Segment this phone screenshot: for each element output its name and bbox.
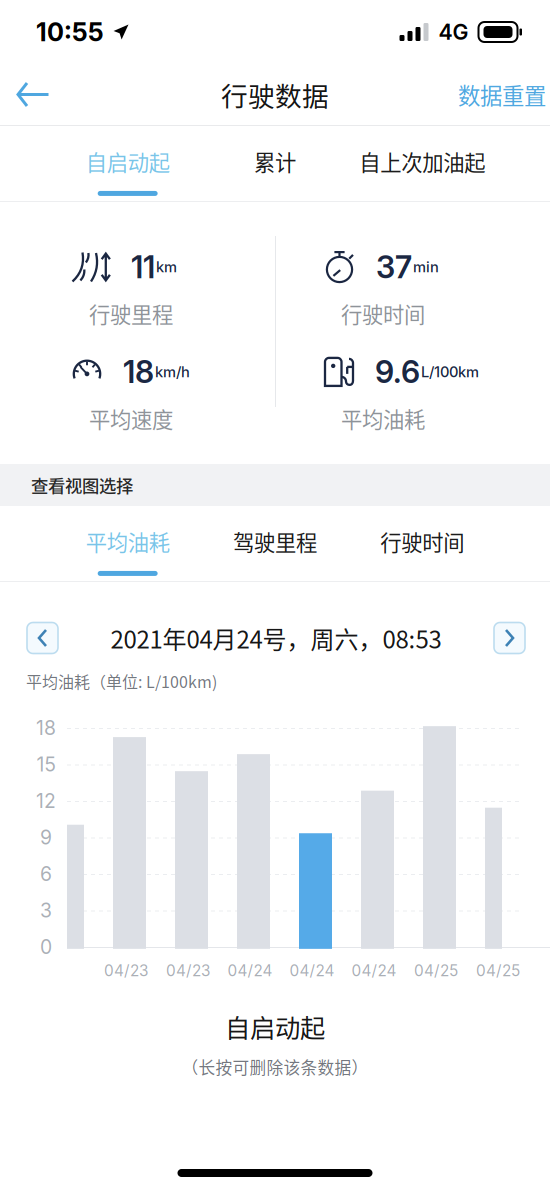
staticText: 10:55 <box>36 17 104 47</box>
staticText: 6 <box>40 862 52 886</box>
staticText: 3 <box>40 899 52 922</box>
staticText: 04/24 <box>227 961 272 980</box>
staticText: 自启动起 <box>86 146 170 177</box>
staticText: 自上次加油起 <box>359 146 485 177</box>
staticText: 平均油耗（单位: L/100km) <box>26 669 217 693</box>
staticText: 行驶里程 <box>89 298 173 329</box>
staticText: 行驶时间 <box>341 298 425 329</box>
staticText: 18 <box>36 716 56 740</box>
button[interactable]: 上一条 <box>27 622 58 653</box>
button[interactable]: 自启动起 <box>54 126 201 201</box>
staticText: 自启动起 <box>225 1008 325 1045</box>
button[interactable]: 数据重置 <box>458 64 550 125</box>
staticText: 04/24 <box>289 961 334 980</box>
staticText: 查看视图选择 <box>31 472 133 498</box>
button[interactable]: 驾驶里程 <box>201 506 349 581</box>
staticText: 9 <box>40 826 52 849</box>
staticText: 行驶时间 <box>380 526 464 557</box>
staticText: km/h <box>155 363 190 381</box>
staticText: 12 <box>36 789 56 813</box>
button[interactable]: 平均油耗 <box>54 506 201 581</box>
staticText: 11 <box>131 248 155 285</box>
staticText: km <box>156 258 177 276</box>
staticText: 04/25 <box>476 961 520 980</box>
staticText: 9.6 <box>375 353 420 390</box>
staticText: 0 <box>40 935 52 959</box>
staticText: 15 <box>36 753 55 776</box>
staticText: 04/24 <box>351 961 396 980</box>
staticText: 4G <box>438 19 468 45</box>
button[interactable]: 返回 <box>0 64 78 125</box>
staticText: （长按可删除该条数据） <box>181 1055 368 1079</box>
button[interactable]: 下一条 <box>494 622 525 653</box>
staticText: 数据重置 <box>458 78 546 111</box>
staticText: 平均油耗 <box>341 403 425 434</box>
staticText: 37 <box>376 248 412 285</box>
button[interactable]: 累计 <box>201 126 349 201</box>
staticText: 行驶数据 <box>221 75 329 114</box>
staticText: 04/23 <box>166 961 210 980</box>
staticText: 驾驶里程 <box>233 526 317 557</box>
staticText: 04/25 <box>414 961 458 980</box>
staticText: L/100km <box>421 363 479 381</box>
staticText: 04/23 <box>104 961 148 980</box>
staticText: 累计 <box>254 146 296 177</box>
staticText: 平均油耗 <box>86 526 170 557</box>
button[interactable]: 自上次加油起 <box>349 126 496 201</box>
button[interactable]: 行驶时间 <box>349 506 496 581</box>
staticText: min <box>413 258 439 276</box>
staticText: 2021年04月24号，周六，08:53 <box>110 621 441 655</box>
staticText: 平均速度 <box>89 403 173 434</box>
staticText: 18 <box>123 353 154 390</box>
